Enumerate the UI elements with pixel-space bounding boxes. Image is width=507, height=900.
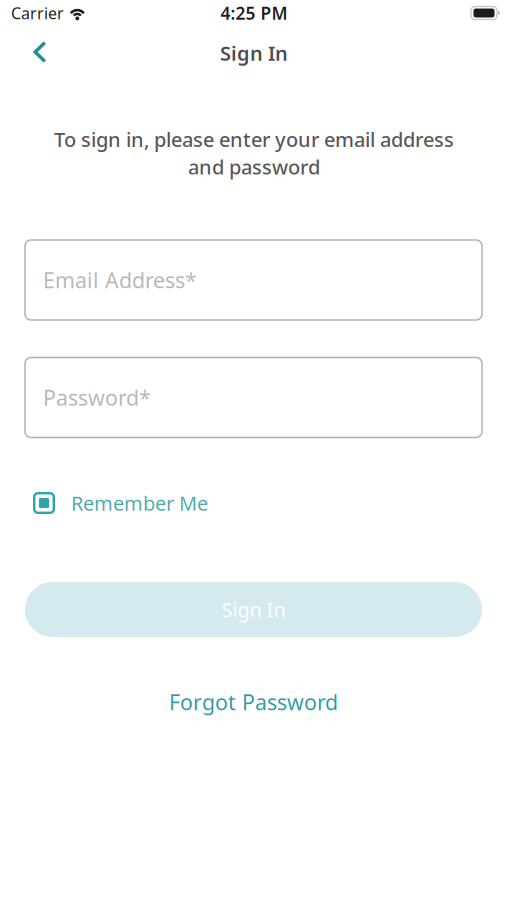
staticText: and password (188, 153, 320, 180)
button[interactable]: Forgot Password (143, 684, 363, 720)
button[interactable]: Sign In (25, 582, 482, 637)
staticText: To sign in, please enter your email addr… (54, 126, 454, 152)
staticText: Email Address* (43, 266, 197, 294)
staticText: Sign In (220, 40, 288, 66)
staticText: Forgot Password (169, 688, 338, 716)
button[interactable]: Password* (25, 357, 482, 437)
staticText: Sign In (221, 596, 285, 623)
staticText: Password* (43, 383, 151, 412)
button[interactable]: Back (17, 30, 63, 74)
staticText: Carrier (11, 2, 64, 24)
button[interactable]: Email Address* (25, 240, 482, 320)
staticText: Remember Me (71, 490, 208, 516)
button[interactable]: Remember Me (0, 486, 507, 520)
staticText: 4:25 PM (220, 1, 287, 24)
